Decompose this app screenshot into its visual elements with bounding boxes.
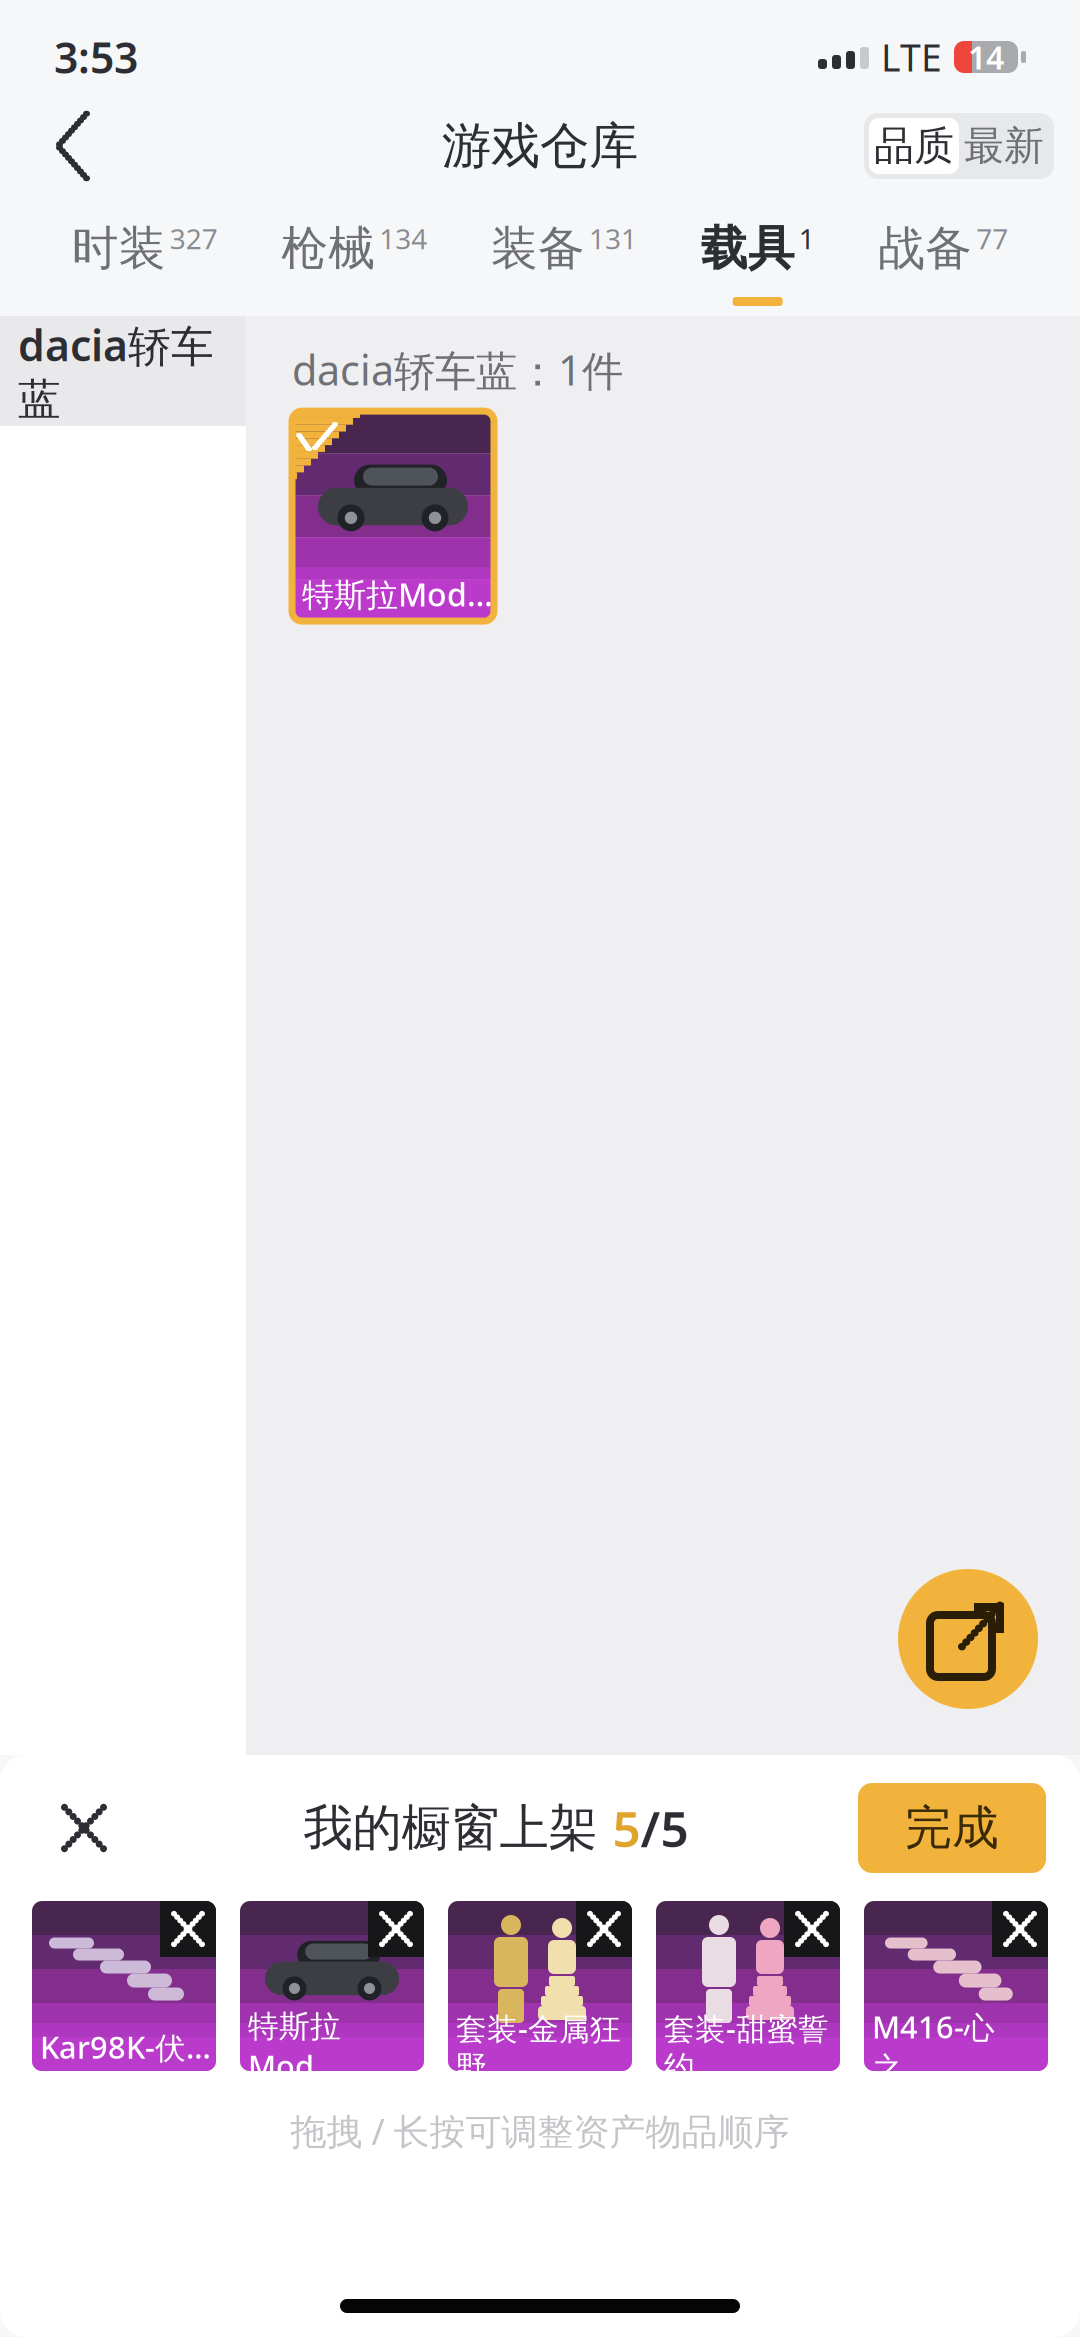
button[interactable]: 套装-金属狂野 [448, 1901, 632, 2071]
button[interactable]: 套装-甜蜜誓约 [656, 1901, 840, 2071]
button[interactable]: 品质 [869, 118, 959, 174]
staticText: 特斯拉Mod… [248, 2008, 341, 2086]
staticText: 完成 [905, 1799, 999, 1857]
button[interactable]: 完成 [858, 1783, 1046, 1873]
button[interactable]: 移除 [992, 1901, 1048, 1957]
button[interactable]: 枪械 [269, 200, 439, 316]
button[interactable]: 特斯拉Mod… [240, 1901, 424, 2071]
staticText: 游戏仓库 [442, 116, 638, 176]
staticText: 套装-甜蜜誓约 [664, 2008, 829, 2086]
staticText: M416-心之… [872, 2006, 995, 2088]
staticText: 131 [589, 220, 637, 257]
staticText: 载具 [701, 220, 795, 277]
staticText: 最新 [964, 121, 1044, 170]
button[interactable]: 移除 [160, 1901, 216, 1957]
staticText: 我的橱窗上架 [303, 1798, 612, 1858]
staticText: dacia轿车蓝：1件 [292, 342, 623, 397]
button[interactable]: 移除 [576, 1901, 632, 1957]
staticText: 3:53 [54, 29, 138, 85]
staticText: 1 [799, 220, 815, 257]
staticText: 装备 [491, 220, 585, 277]
staticText: Kar98K-伏… [40, 2027, 211, 2067]
button[interactable]: 装备 [479, 200, 649, 316]
button[interactable]: 战备 [866, 200, 1020, 316]
staticText: 品质 [874, 121, 954, 170]
button[interactable]: 移除 [784, 1901, 840, 1957]
staticText: 14 [968, 36, 1004, 78]
staticText: 5 [612, 1795, 640, 1861]
button[interactable]: 关闭 [34, 1778, 134, 1878]
staticText: 77 [976, 220, 1008, 257]
button[interactable]: 移除 [368, 1901, 424, 1957]
staticText: 特斯拉Mod… [302, 573, 493, 615]
staticText: dacia轿车蓝 [18, 316, 214, 426]
button[interactable]: 特斯拉Mod… [292, 411, 494, 621]
staticText: 战备 [878, 220, 972, 277]
staticText: LTE [881, 32, 942, 82]
staticText: 时装 [72, 220, 166, 277]
button[interactable]: M416-心之… [864, 1901, 1048, 2071]
staticText: /5 [640, 1795, 688, 1861]
button[interactable]: 最新 [959, 118, 1049, 174]
button[interactable]: 时装 [60, 200, 230, 316]
staticText: 拖拽 / 长按可调整资产物品顺序 [290, 2107, 789, 2155]
button[interactable]: 载具 [689, 200, 827, 316]
button[interactable]: Kar98K-伏… [32, 1901, 216, 2071]
staticText: 134 [379, 220, 427, 257]
staticText: 枪械 [281, 220, 375, 277]
button[interactable]: dacia轿车蓝 [0, 316, 246, 426]
staticText: 327 [170, 220, 218, 257]
button[interactable]: 返回 [26, 99, 120, 193]
button[interactable]: 分享 [898, 1569, 1038, 1709]
staticText: 套装-金属狂野 [456, 2008, 621, 2086]
